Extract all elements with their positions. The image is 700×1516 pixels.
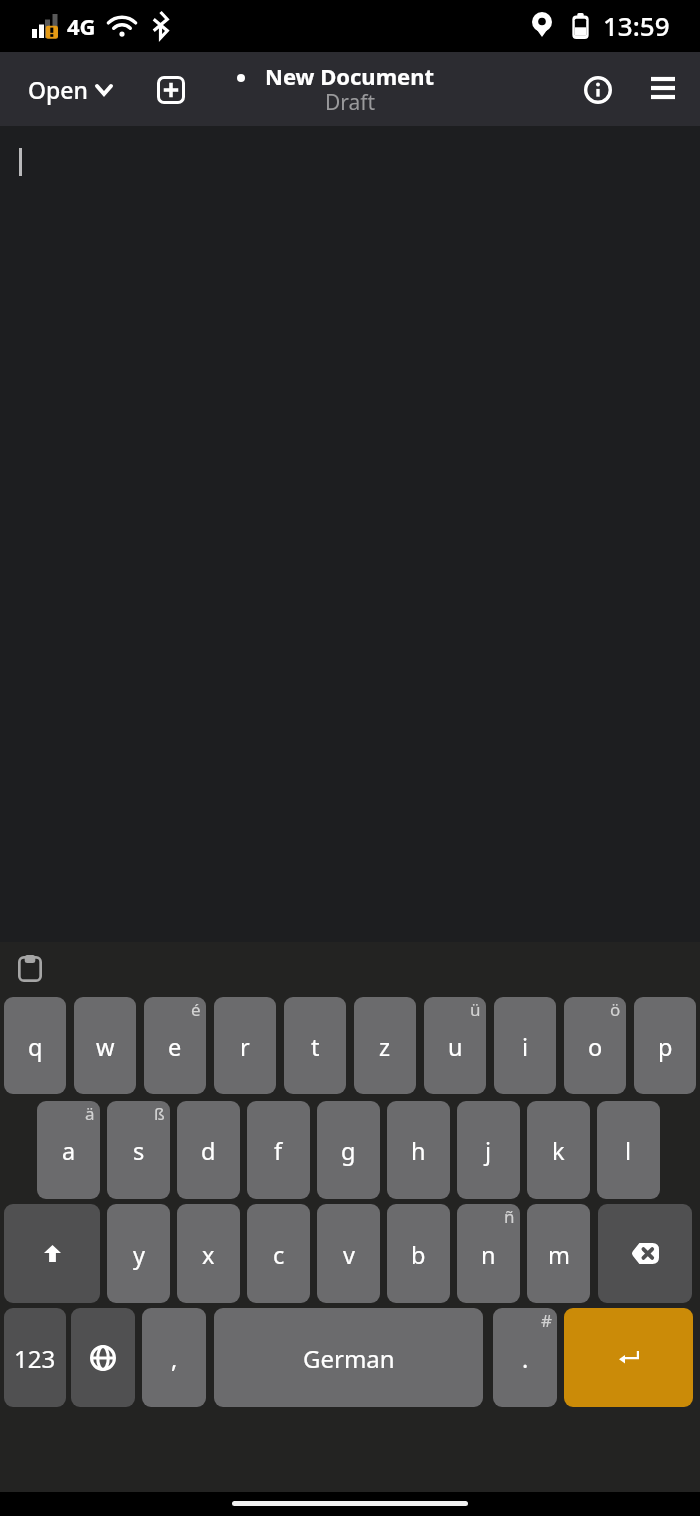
staticText: h — [411, 1135, 426, 1167]
staticText: t — [311, 1031, 320, 1063]
staticText: u — [448, 1031, 463, 1063]
staticText: ö — [610, 998, 621, 1021]
staticText: j — [485, 1135, 492, 1167]
staticText: m — [548, 1239, 570, 1271]
staticText: a — [62, 1135, 76, 1167]
button[interactable]: t — [284, 997, 346, 1094]
staticText: z — [379, 1031, 391, 1063]
staticText: é — [191, 998, 201, 1021]
button[interactable]: i — [494, 997, 556, 1094]
staticText: e — [168, 1031, 182, 1063]
staticText: x — [202, 1239, 215, 1271]
button[interactable]: , — [142, 1308, 206, 1407]
staticText: Draft — [325, 88, 376, 117]
button[interactable]: y — [107, 1204, 170, 1303]
button[interactable]: p — [634, 997, 696, 1094]
staticText: c — [273, 1239, 285, 1271]
button[interactable]: a — [37, 1101, 100, 1199]
staticText: 13:59 — [603, 8, 670, 43]
staticText: New Document — [265, 61, 435, 91]
button[interactable]: s — [107, 1101, 170, 1199]
staticText: l — [625, 1135, 632, 1167]
button[interactable]: Menu — [638, 63, 687, 112]
staticText: s — [133, 1135, 145, 1167]
staticText: . — [522, 1343, 529, 1375]
staticText: German — [303, 1342, 395, 1375]
button[interactable]: Enter — [564, 1308, 693, 1407]
staticText: d — [201, 1135, 216, 1167]
staticText: v — [343, 1239, 355, 1271]
staticText: n — [481, 1239, 496, 1271]
staticText: p — [658, 1031, 673, 1063]
button[interactable]: u — [424, 997, 486, 1094]
button[interactable]: e — [144, 997, 206, 1094]
staticText: q — [28, 1031, 43, 1063]
staticText: f — [274, 1135, 283, 1167]
staticText: g — [341, 1135, 356, 1167]
button[interactable]: w — [74, 997, 136, 1094]
staticText: i — [522, 1031, 529, 1063]
button[interactable]: Change language — [71, 1308, 135, 1407]
button[interactable]: 123 — [4, 1308, 66, 1407]
staticText: # — [541, 1309, 552, 1332]
button[interactable]: v — [317, 1204, 380, 1303]
button[interactable]: New document — [147, 66, 194, 113]
button[interactable]: d — [177, 1101, 240, 1199]
staticText: 4G — [67, 11, 96, 41]
button[interactable]: Info — [573, 65, 622, 114]
button[interactable]: r — [214, 997, 276, 1094]
button[interactable]: h — [387, 1101, 450, 1199]
button[interactable]: Open — [16, 65, 125, 113]
button[interactable]: . — [493, 1308, 557, 1407]
button[interactable]: b — [387, 1204, 450, 1303]
staticText: Open — [28, 74, 88, 105]
staticText: , — [171, 1343, 178, 1375]
staticText: b — [411, 1239, 426, 1271]
button[interactable]: o — [564, 997, 626, 1094]
button[interactable]: q — [4, 997, 66, 1094]
staticText: y — [133, 1239, 145, 1271]
button[interactable]: Clipboard — [0, 942, 59, 990]
staticText: ñ — [504, 1205, 515, 1228]
button[interactable]: l — [597, 1101, 660, 1199]
button[interactable]: j — [457, 1101, 520, 1199]
staticText: 123 — [14, 1342, 56, 1375]
button[interactable]: Backspace — [598, 1204, 692, 1303]
button[interactable]: g — [317, 1101, 380, 1199]
button[interactable]: k — [527, 1101, 590, 1199]
button[interactable]: German — [214, 1308, 483, 1407]
staticText: ß — [154, 1102, 165, 1125]
button[interactable]: m — [527, 1204, 590, 1303]
staticText: w — [96, 1031, 115, 1063]
button[interactable]: z — [354, 997, 416, 1094]
button[interactable]: x — [177, 1204, 240, 1303]
staticText: k — [552, 1135, 565, 1167]
button[interactable]: f — [247, 1101, 310, 1199]
button[interactable]: n — [457, 1204, 520, 1303]
staticText: r — [240, 1031, 250, 1063]
staticText: ä — [85, 1102, 95, 1125]
staticText: ü — [470, 998, 481, 1021]
button[interactable]: Shift — [4, 1204, 100, 1303]
button[interactable]: c — [247, 1204, 310, 1303]
staticText: o — [588, 1031, 603, 1063]
